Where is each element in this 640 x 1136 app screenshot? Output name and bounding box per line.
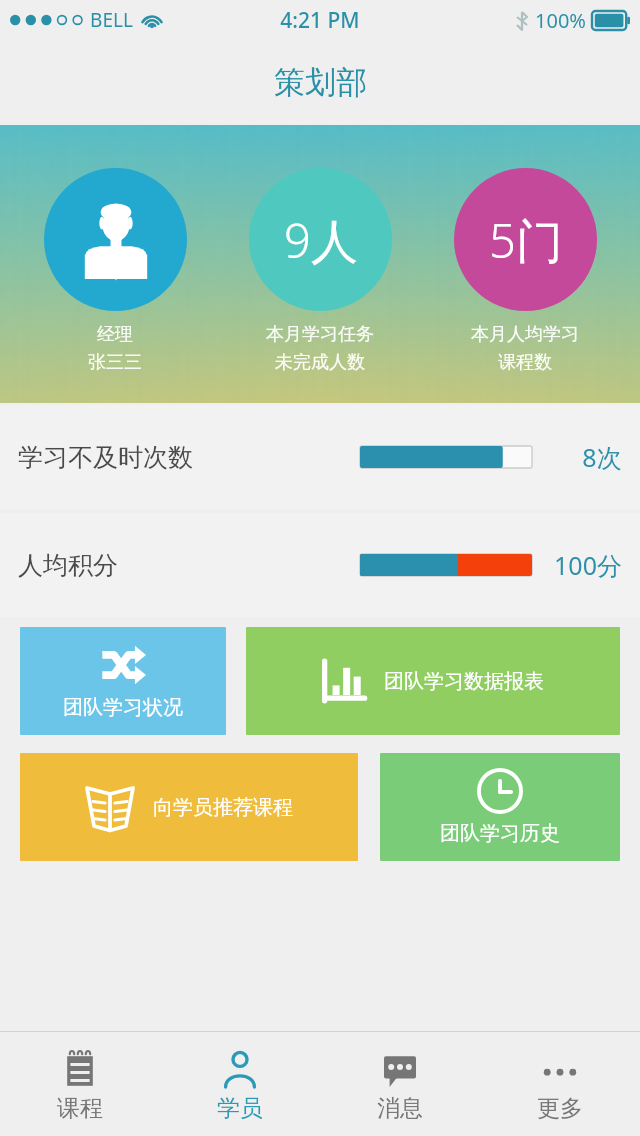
other: 向学员推荐课程: [85, 782, 135, 832]
staticText: 8次: [582, 440, 622, 474]
button[interactable]: 团队学习数据报表: [246, 627, 620, 735]
staticText: 100分: [554, 548, 622, 582]
staticText: 100%: [535, 7, 586, 34]
staticText: 团队学习状况: [63, 695, 183, 720]
button[interactable]: 团队学习历史: [380, 753, 620, 861]
staticText: 9人: [284, 208, 358, 272]
button[interactable]: 学习不及时次数: [0, 405, 640, 509]
button[interactable]: 课程: [0, 1032, 160, 1136]
staticText: 学习不及时次数: [18, 442, 193, 473]
other: 团队学习历史: [477, 768, 523, 814]
staticText: BELL: [90, 7, 133, 33]
staticText: 策划部: [274, 63, 367, 102]
button[interactable]: 向学员推荐课程: [20, 753, 358, 861]
button[interactable]: 5门: [435, 168, 615, 379]
staticText: 学员: [217, 1094, 263, 1123]
staticText: 课程数: [498, 351, 552, 374]
staticText: 消息: [377, 1094, 423, 1123]
staticText: 团队学习历史: [440, 821, 560, 846]
staticText: 5门: [489, 208, 563, 272]
button[interactable]: 团队学习状况: [20, 627, 226, 735]
button[interactable]: 经理: [25, 168, 205, 379]
other: 团队学习状况: [100, 642, 146, 688]
staticText: 4:21 PM: [280, 6, 360, 35]
button[interactable]: 消息: [320, 1032, 480, 1136]
button[interactable]: 人均积分: [0, 513, 640, 617]
staticText: 本月学习任务: [266, 323, 374, 346]
staticText: 团队学习数据报表: [384, 669, 544, 694]
staticText: 本月人均学习: [471, 323, 579, 346]
staticText: 经理: [97, 323, 133, 346]
button[interactable]: 9人: [230, 168, 410, 379]
other: 团队学习数据报表: [322, 659, 366, 703]
button[interactable]: 学员: [160, 1032, 320, 1136]
staticText: 人均积分: [18, 550, 118, 581]
staticText: 更多: [537, 1094, 583, 1123]
staticText: 未完成人数: [275, 351, 365, 374]
staticText: 张三三: [88, 351, 142, 374]
staticText: 课程: [57, 1094, 103, 1123]
button[interactable]: 更多: [480, 1032, 640, 1136]
staticText: 向学员推荐课程: [153, 795, 293, 820]
